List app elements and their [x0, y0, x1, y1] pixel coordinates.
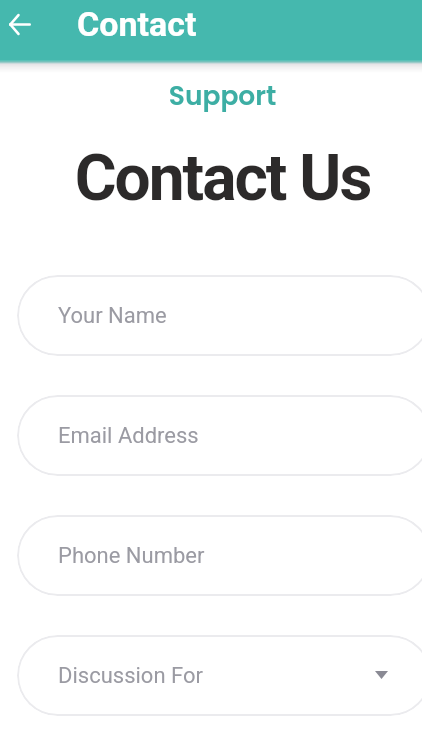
staticText: Contact — [77, 4, 197, 44]
button[interactable]: Email Address — [17, 395, 422, 476]
staticText: Discussion For — [58, 663, 203, 689]
staticText: Your Name — [58, 303, 167, 329]
staticText: Phone Number — [58, 543, 205, 569]
staticText: Support — [20, 77, 422, 114]
button[interactable]: Phone Number — [17, 515, 422, 596]
button[interactable]: Your Name — [17, 275, 422, 356]
button[interactable]: Discussion For — [17, 635, 422, 716]
button[interactable]: Choose discussion topic — [359, 654, 403, 698]
staticText: Email Address — [58, 423, 199, 449]
staticText: Contact Us — [20, 141, 422, 216]
button[interactable]: Back — [0, 4, 40, 44]
